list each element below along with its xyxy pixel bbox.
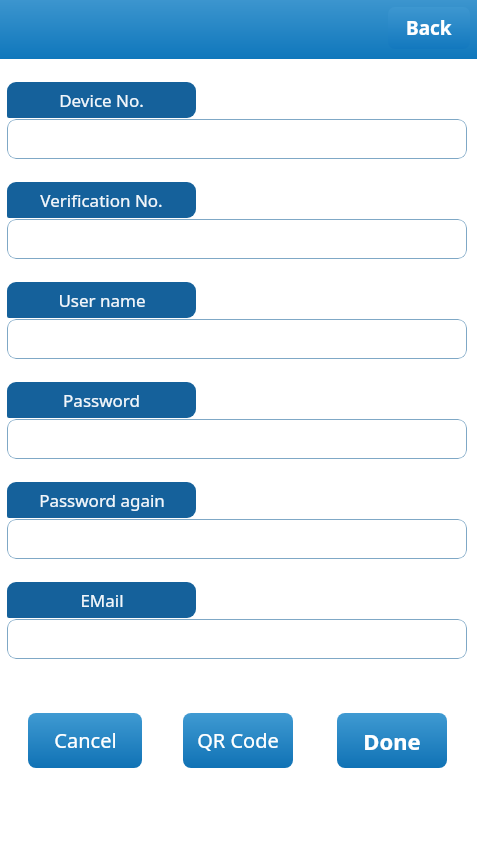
staticText: QR Code	[197, 727, 279, 754]
button[interactable]: EMail	[7, 582, 196, 618]
button[interactable]: Cancel	[28, 713, 142, 768]
staticText: EMail	[80, 589, 124, 612]
button[interactable]: Device No.	[7, 82, 196, 118]
staticText: Password again	[39, 489, 165, 512]
button[interactable]: Back	[388, 7, 470, 49]
staticText: Verification No.	[40, 189, 163, 212]
button[interactable]	[7, 319, 467, 359]
button[interactable]	[7, 219, 467, 259]
button[interactable]	[7, 619, 467, 659]
button[interactable]: QR Code	[183, 713, 293, 768]
button[interactable]	[7, 419, 467, 459]
button[interactable]: Done	[337, 713, 447, 768]
button[interactable]: Password again	[7, 482, 196, 518]
staticText: Cancel	[54, 727, 117, 754]
button[interactable]: User name	[7, 282, 196, 318]
button[interactable]: Verification No.	[7, 182, 196, 218]
button[interactable]: Password	[7, 382, 196, 418]
staticText: Device No.	[59, 89, 144, 112]
staticText: Back	[406, 15, 452, 41]
staticText: Done	[363, 726, 421, 756]
button[interactable]	[7, 119, 467, 159]
button[interactable]	[7, 519, 467, 559]
staticText: Password	[63, 389, 140, 412]
staticText: User name	[58, 289, 146, 312]
